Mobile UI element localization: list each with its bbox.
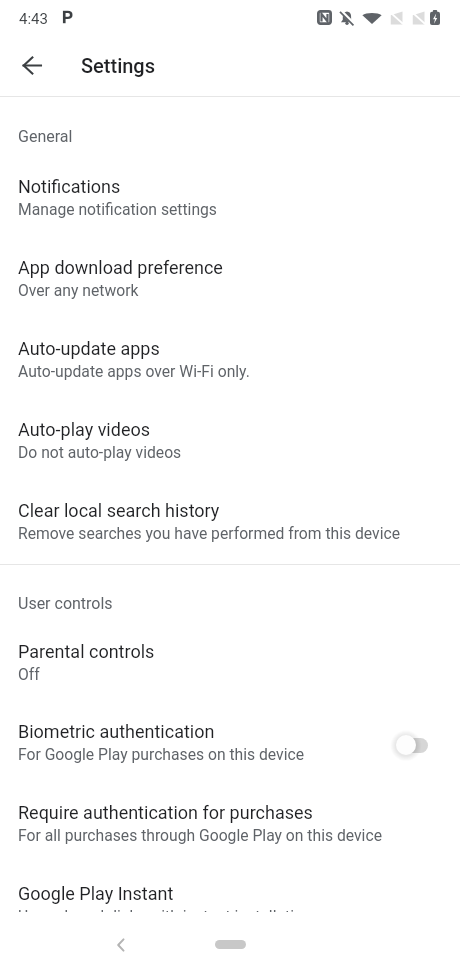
staticText: For Google Play purchases on this device	[18, 745, 305, 763]
button[interactable]: Biometric authentication toggle	[386, 725, 442, 765]
button[interactable]: Back	[106, 930, 136, 960]
staticText: Do not auto-play videos	[18, 443, 182, 461]
staticText: User controls	[18, 594, 113, 613]
staticText: For all purchases through Google Play on…	[18, 826, 382, 844]
staticText: Notifications	[18, 176, 121, 197]
staticText: Settings	[81, 54, 156, 77]
button[interactable]: Clear local search history	[0, 490, 460, 558]
button[interactable]: Navigate up	[8, 41, 56, 89]
staticText: Auto-play videos	[18, 419, 150, 440]
staticText: General	[18, 127, 73, 146]
staticText: Parental controls	[18, 641, 155, 662]
staticText: Google Play Instant	[18, 883, 174, 904]
staticText: Clear local search history	[18, 500, 220, 521]
staticText: Auto-update apps	[18, 338, 160, 359]
staticText: Manage notification settings	[18, 200, 217, 218]
staticText: App download preference	[18, 257, 223, 278]
button[interactable]: Auto-play videos	[0, 409, 460, 477]
staticText: Remove searches you have performed from …	[18, 524, 401, 542]
button[interactable]: Auto-update apps	[0, 328, 460, 396]
staticText: Off	[18, 665, 40, 683]
button[interactable]: Google Play Instant	[0, 873, 460, 941]
staticText: Over any network	[18, 281, 139, 299]
button[interactable]: Biometric authentication	[0, 711, 460, 779]
staticText: Auto-update apps over Wi-Fi only.	[18, 362, 250, 380]
staticText: P	[62, 7, 73, 27]
button[interactable]: Require authentication for purchases	[0, 792, 460, 860]
button[interactable]: Home	[215, 940, 246, 949]
staticText: Biometric authentication	[18, 721, 215, 742]
staticText: Upgrade web links with instant installat…	[18, 907, 312, 925]
button[interactable]: Notifications	[0, 166, 460, 234]
staticText: 4:43	[19, 10, 48, 28]
button[interactable]: Parental controls	[0, 631, 460, 699]
button[interactable]: App download preference	[0, 247, 460, 315]
staticText: Require authentication for purchases	[18, 802, 313, 823]
